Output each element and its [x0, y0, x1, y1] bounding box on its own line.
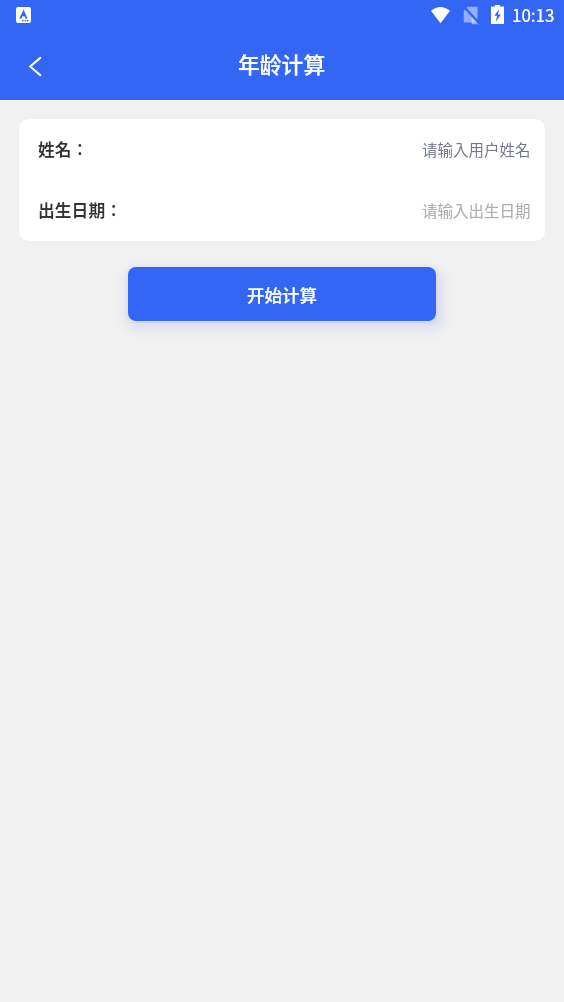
staticText: 出生日期： — [38, 198, 122, 222]
staticText: 10:13 — [512, 2, 555, 27]
button[interactable]: 出生日期： — [19, 180, 545, 241]
staticText: 姓名： — [38, 137, 89, 161]
staticText: 开始计算 — [247, 282, 317, 307]
staticText: 年龄计算 — [238, 48, 326, 80]
button[interactable]: Back — [9, 40, 61, 92]
staticText: 请输入出生日期 — [422, 199, 531, 221]
button[interactable]: 姓名： — [19, 119, 545, 180]
button[interactable]: 开始计算 — [128, 267, 436, 321]
staticText: 请输入用户姓名 — [422, 138, 531, 160]
